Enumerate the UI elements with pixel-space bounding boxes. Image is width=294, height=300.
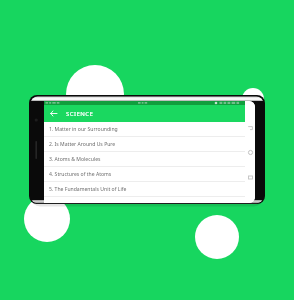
staticText: 3. Atoms & Molecules: [49, 156, 101, 163]
button[interactable]: Home: [245, 147, 255, 157]
staticText: SCIENCE: [66, 110, 94, 118]
button[interactable]: 4. Structures of the Atoms: [44, 167, 245, 182]
button[interactable]: 3. Atoms & Molecules: [44, 152, 245, 167]
button[interactable]: Back: [245, 123, 255, 133]
button[interactable]: 5. The Fundamentals Unit of Life: [44, 182, 245, 197]
button[interactable]: 2. Is Matter Around Us Pure: [44, 137, 245, 152]
staticText: 2. Is Matter Around Us Pure: [49, 141, 116, 148]
button[interactable]: Navigate up: [46, 106, 61, 121]
staticText: 4. Structures of the Atoms: [49, 171, 112, 178]
button[interactable]: 1. Matter in our Surrounding: [44, 122, 245, 137]
button[interactable]: Recent apps: [245, 172, 255, 182]
staticText: 1. Matter in our Surrounding: [49, 126, 118, 133]
staticText: 5. The Fundamentals Unit of Life: [49, 186, 127, 193]
